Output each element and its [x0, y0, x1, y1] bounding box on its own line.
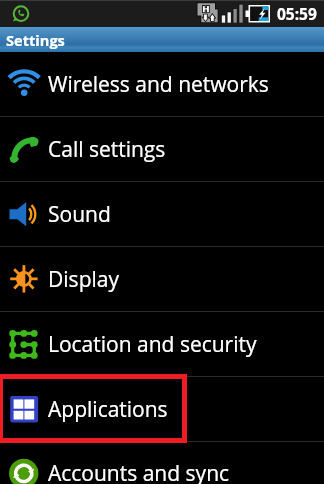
staticText: Sound: [48, 200, 111, 229]
button[interactable]: Display: [0, 247, 324, 312]
button[interactable]: Applications: [0, 377, 324, 442]
button[interactable]: Accounts and sync: [0, 441, 324, 484]
other: Location and security: [8, 328, 40, 360]
staticText: Settings: [6, 30, 65, 50]
button[interactable]: Location and security: [0, 312, 324, 377]
other: Accounts and sync: [8, 457, 40, 484]
staticText: Accounts and sync: [48, 459, 230, 484]
staticText: Wireless and networks: [48, 70, 269, 99]
button[interactable]: Wireless and networks: [0, 52, 324, 117]
staticText: Display: [48, 265, 120, 294]
button[interactable]: Sound: [0, 182, 324, 247]
staticText: Call settings: [48, 135, 166, 164]
other: Sound: [8, 198, 40, 230]
other: Applications: [8, 393, 40, 425]
staticText: Location and security: [48, 330, 257, 359]
button[interactable]: Call settings: [0, 117, 324, 182]
other: Call settings: [8, 133, 40, 165]
staticText: Applications: [48, 395, 168, 424]
staticText: 05:59: [277, 3, 317, 24]
other: Display: [8, 263, 40, 295]
other: Wireless and networks: [8, 68, 40, 100]
